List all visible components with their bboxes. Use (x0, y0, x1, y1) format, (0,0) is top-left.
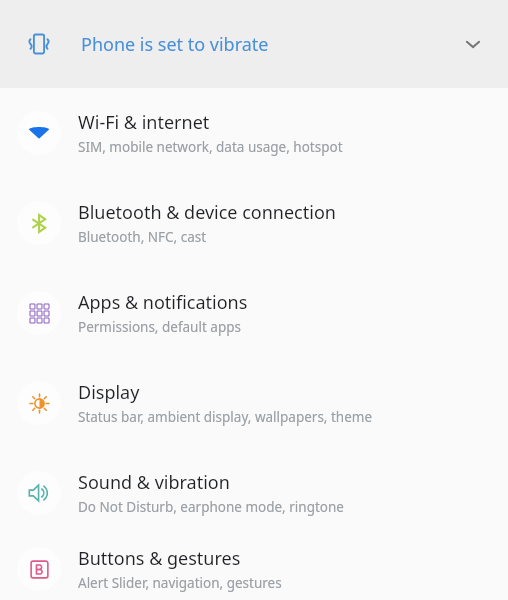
staticText: Phone is set to vibrate (81, 32, 269, 57)
button[interactable]: Sound & vibration (0, 448, 508, 538)
staticText: SIM, mobile network, data usage, hotspot (78, 138, 343, 156)
staticText: Bluetooth, NFC, cast (78, 228, 207, 246)
staticText: Do Not Disturb, earphone mode, ringtone (78, 498, 344, 516)
staticText: Status bar, ambient display, wallpapers,… (78, 408, 373, 426)
button[interactable]: Apps & notifications (0, 268, 508, 358)
button[interactable]: Bluetooth & device connection (0, 178, 508, 268)
button[interactable]: Buttons & gestures (0, 538, 508, 600)
staticText: Sound & vibration (78, 470, 230, 495)
staticText: Bluetooth & device connection (78, 200, 336, 225)
staticText: Buttons & gestures (78, 546, 241, 571)
staticText: Apps & notifications (78, 290, 248, 315)
button[interactable]: Wi-Fi & internet (0, 88, 508, 178)
staticText: Wi-Fi & internet (78, 110, 210, 135)
staticText: Display (78, 380, 140, 405)
button[interactable]: Expand (449, 20, 497, 68)
staticText: Permissions, default apps (78, 318, 241, 336)
staticText: Alert Slider, navigation, gestures (78, 574, 282, 592)
button[interactable]: Display (0, 358, 508, 448)
button[interactable]: Phone is set to vibrate (0, 0, 508, 88)
